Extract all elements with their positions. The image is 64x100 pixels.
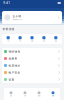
staticText: 购物车 — [37, 95, 40, 97]
staticText: 我的 — [52, 95, 54, 97]
button[interactable]: 足迹 — [39, 36, 49, 42]
staticText: 我的钱包 — [9, 50, 21, 53]
staticText: 收藏 — [31, 40, 33, 42]
button[interactable]: 我的钱包 — [2, 48, 62, 55]
staticText: 王小明 — [12, 15, 21, 18]
staticText: 收货地址 — [9, 64, 21, 67]
button[interactable]: 设置 — [2, 76, 62, 83]
staticText: 订单 — [7, 40, 9, 42]
button[interactable]: 账户安全 — [2, 69, 62, 76]
staticText: 首页 — [10, 95, 12, 97]
button[interactable]: 购物车 — [32, 91, 46, 97]
staticText: 账户安全 — [9, 71, 21, 74]
staticText: 黄金会员 · 积分 2480 — [12, 19, 22, 20]
button[interactable]: 首页 — [4, 91, 18, 97]
button[interactable]: 订单 — [3, 36, 13, 42]
staticText: 优惠券 — [9, 57, 18, 60]
staticText: 足迹 — [43, 40, 45, 42]
button[interactable]: 客服 — [51, 36, 61, 42]
staticText: 分类 — [24, 95, 26, 97]
button[interactable]: 分类 — [18, 91, 32, 97]
button[interactable]: 我的 — [46, 91, 60, 97]
button[interactable]: 王小明 — [2, 11, 62, 24]
staticText: 常用功能 — [3, 27, 15, 31]
staticText: 设置 — [9, 78, 15, 81]
staticText: 卡券 — [19, 40, 21, 42]
button[interactable]: 优惠券 — [2, 55, 62, 62]
button[interactable]: 卡券 — [15, 36, 25, 42]
button[interactable]: 收藏 — [27, 36, 37, 42]
button[interactable]: 收货地址 — [2, 62, 62, 69]
staticText: 9:41 — [3, 1, 10, 5]
staticText: 客服 — [55, 40, 57, 42]
